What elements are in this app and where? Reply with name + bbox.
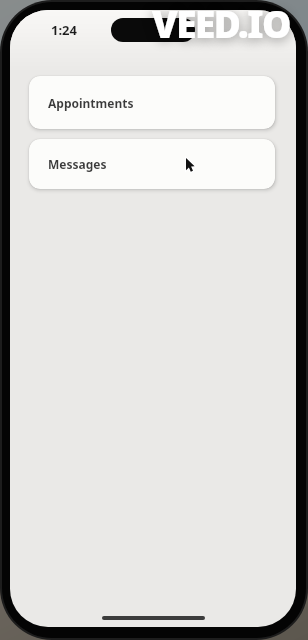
button[interactable]: Messages xyxy=(29,139,275,189)
staticText: Appointments xyxy=(48,95,134,111)
staticText: VEED.IO xyxy=(152,0,290,48)
staticText: 1:24 xyxy=(51,21,77,39)
staticText: Messages xyxy=(48,156,107,172)
button[interactable]: Appointments xyxy=(29,76,275,129)
